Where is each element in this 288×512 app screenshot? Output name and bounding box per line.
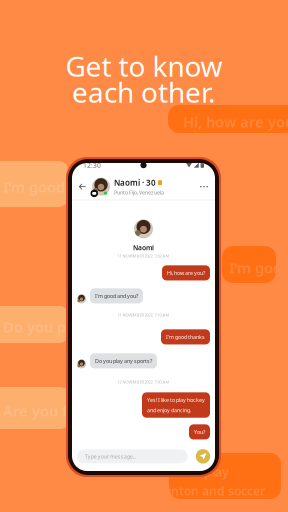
- staticText: You?: [194, 428, 205, 435]
- staticText: Punto Fijo, Venezuela: [114, 189, 164, 196]
- staticText: I'm good thanks: [229, 258, 288, 277]
- button[interactable]: Naomi · 30: [72, 174, 215, 200]
- staticText: 11 NOVEMBER 2022, 7:10 AM: [117, 312, 169, 317]
- staticText: Type your message...: [85, 453, 136, 460]
- staticText: I'm good and you?: [95, 292, 138, 299]
- staticText: Do you play any sports?: [95, 357, 152, 364]
- button[interactable]: Type your message...: [77, 449, 188, 463]
- staticText: Do you play any sports?: [3, 317, 172, 336]
- staticText: Are you free?: [3, 401, 98, 420]
- staticText: Naomi: [133, 243, 154, 252]
- staticText: Yes! I like to play hockey and enjoy dan…: [147, 396, 205, 414]
- staticText: 12:30: [83, 161, 101, 170]
- staticText: 12 NOVEMBER 2022, 7:00 AM: [117, 379, 169, 384]
- staticText: Hi, how are you?: [167, 269, 205, 276]
- staticText: Hi, how are you?: [183, 112, 288, 131]
- staticText: 11 NOVEMBER 2022, 7:02 AM: [117, 253, 169, 258]
- staticText: I'm good thanks: [166, 333, 205, 340]
- staticText: Get to know: [65, 47, 222, 85]
- staticText: Naomi · 30: [114, 177, 156, 188]
- staticText: each other.: [72, 73, 216, 111]
- staticText: I'm good and you?: [3, 177, 133, 196]
- staticText: Yes! I like to play badminton and soccer: [133, 464, 265, 499]
- button[interactable]: Send: [196, 449, 210, 464]
